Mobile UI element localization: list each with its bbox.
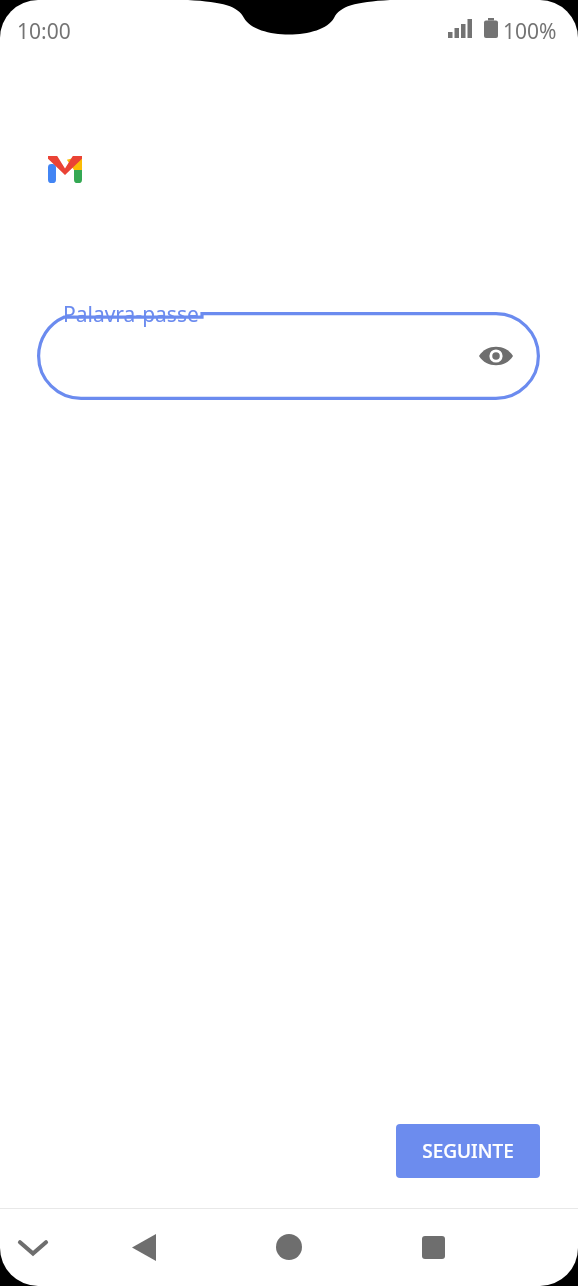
button[interactable]: Início xyxy=(265,1223,313,1271)
button[interactable]: SEGUINTE xyxy=(396,1124,540,1178)
button[interactable]: Mostrar palavra-passe xyxy=(474,334,518,378)
staticText: SEGUINTE xyxy=(422,1138,514,1164)
button[interactable]: Palavra-passe xyxy=(37,312,540,400)
staticText: 100% xyxy=(503,17,557,46)
staticText: 10:00 xyxy=(17,17,71,46)
button[interactable]: Ocultar teclado xyxy=(9,1223,57,1271)
button[interactable]: Vista geral xyxy=(409,1223,457,1271)
staticText: Palavra-passe xyxy=(63,300,199,329)
button[interactable]: Anterior xyxy=(120,1223,168,1271)
